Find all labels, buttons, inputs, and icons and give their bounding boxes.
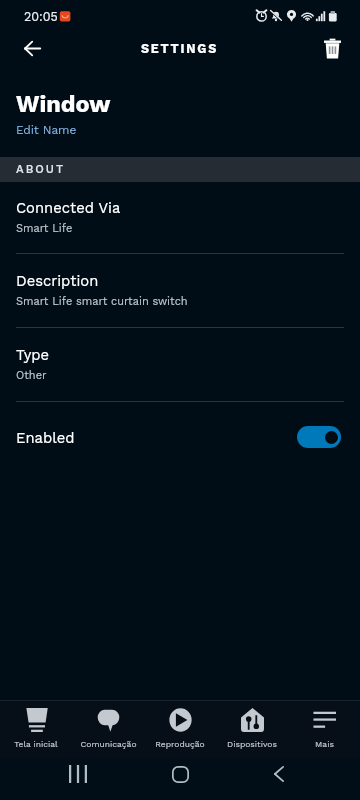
button[interactable]: Enabled bbox=[0, 402, 360, 472]
staticText: Reprodução bbox=[155, 739, 205, 749]
button[interactable]: Type bbox=[0, 328, 360, 401]
staticText: Description bbox=[16, 272, 99, 289]
button[interactable]: Comunicação bbox=[72, 700, 144, 758]
staticText: ABOUT bbox=[16, 162, 66, 175]
button[interactable]: Dispositivos bbox=[216, 700, 288, 758]
button[interactable]: Back bbox=[257, 753, 301, 795]
staticText: 20:05 bbox=[24, 9, 58, 24]
staticText: Type bbox=[16, 346, 50, 363]
staticText: Mais bbox=[315, 739, 334, 749]
button[interactable]: Description bbox=[0, 254, 360, 327]
button[interactable]: Mais bbox=[288, 700, 360, 758]
button[interactable]: Connected Via bbox=[0, 182, 360, 253]
staticText: Dispositivos bbox=[227, 739, 277, 749]
staticText: Edit Name bbox=[16, 123, 77, 137]
button[interactable]: Delete bbox=[308, 28, 356, 68]
button[interactable]: Edit Name bbox=[16, 123, 77, 137]
staticText: Tela inicial bbox=[14, 739, 58, 749]
staticText: Other bbox=[16, 369, 47, 382]
button[interactable]: Home bbox=[158, 753, 202, 795]
button[interactable]: Back bbox=[8, 28, 56, 68]
button[interactable]: Tela inicial bbox=[0, 700, 72, 758]
staticText: Enabled bbox=[16, 429, 75, 446]
button[interactable]: Recents bbox=[56, 753, 100, 795]
staticText: Comunicação bbox=[80, 739, 137, 749]
staticText: Window bbox=[16, 90, 111, 118]
staticText: Connected Via bbox=[16, 199, 121, 216]
staticText: SETTINGS bbox=[141, 41, 219, 56]
staticText: Smart Life smart curtain switch bbox=[16, 295, 188, 308]
button[interactable]: Reprodução bbox=[144, 700, 216, 758]
staticText: Smart Life bbox=[16, 222, 73, 235]
